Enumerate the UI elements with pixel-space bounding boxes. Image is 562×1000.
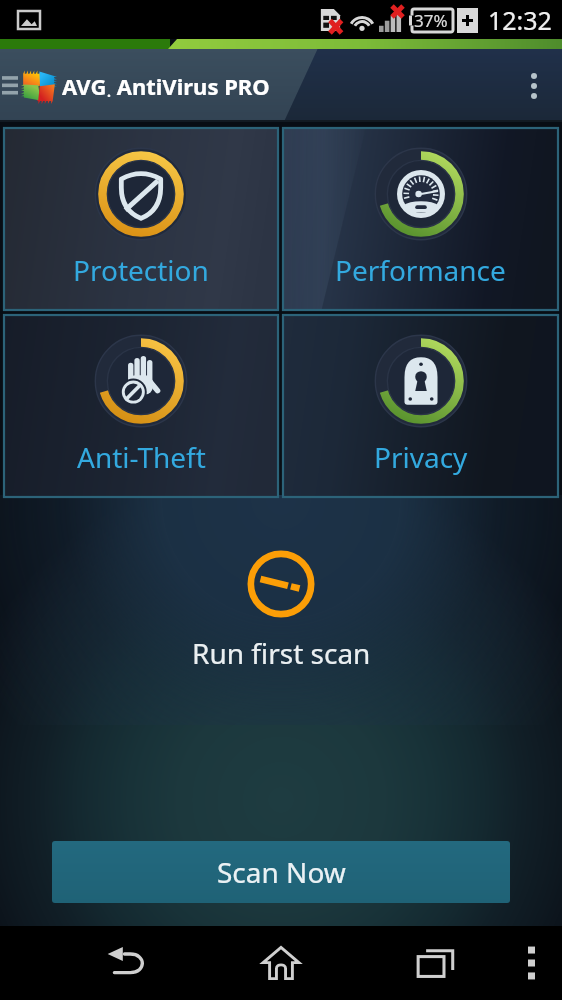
staticText: AVG xyxy=(62,71,107,101)
button[interactable]: Scan Now xyxy=(52,841,510,903)
staticText: AntiVirus PRO xyxy=(111,71,270,101)
button[interactable]: More options xyxy=(506,49,562,122)
staticText: Performance xyxy=(335,251,506,289)
staticText: Anti-Theft xyxy=(77,438,206,476)
staticText: 37% xyxy=(414,9,448,32)
button[interactable]: Home xyxy=(226,926,336,1000)
staticText: Privacy xyxy=(374,438,468,476)
staticText: Run first scan xyxy=(192,634,371,672)
staticText: Protection xyxy=(73,251,209,289)
button[interactable]: Menu xyxy=(501,926,561,1000)
button[interactable]: Protection xyxy=(4,128,278,310)
button[interactable]: Back xyxy=(72,926,182,1000)
staticText: Scan Now xyxy=(217,853,346,891)
button[interactable]: Performance xyxy=(283,128,558,310)
staticText: 12:32 xyxy=(488,3,552,37)
button[interactable]: Recent apps xyxy=(381,926,491,1000)
button[interactable]: Privacy xyxy=(283,315,558,497)
staticText: . xyxy=(107,82,111,101)
button[interactable]: Anti-Theft xyxy=(4,315,278,497)
